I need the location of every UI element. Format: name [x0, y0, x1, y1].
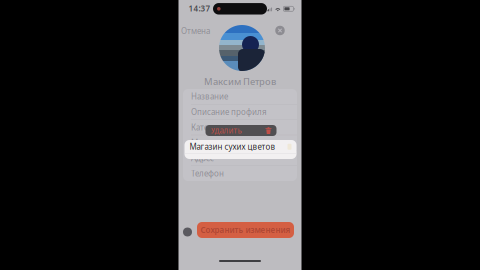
button[interactable]: Отмена [178, 24, 213, 38]
staticText: Магазин сухих цветов [191, 137, 277, 148]
staticText: 14:37 [188, 3, 210, 14]
staticText: Сохранить изменения [200, 225, 290, 235]
staticText: Телефон [191, 168, 224, 179]
staticText: Название [191, 91, 228, 102]
staticText: Описание профиля [191, 107, 267, 117]
staticText: Отмена [181, 26, 210, 36]
staticText: Магазин сухих цветов [189, 141, 275, 152]
button[interactable]: Сохранить изменения [197, 222, 294, 238]
staticText: Категория [191, 122, 231, 133]
staticText: Максим Петров [204, 75, 276, 88]
staticText: Удалить [210, 125, 241, 136]
staticText: Адрес [191, 153, 214, 163]
button[interactable]: Close [273, 24, 287, 37]
button[interactable]: Удалить [205, 125, 276, 136]
